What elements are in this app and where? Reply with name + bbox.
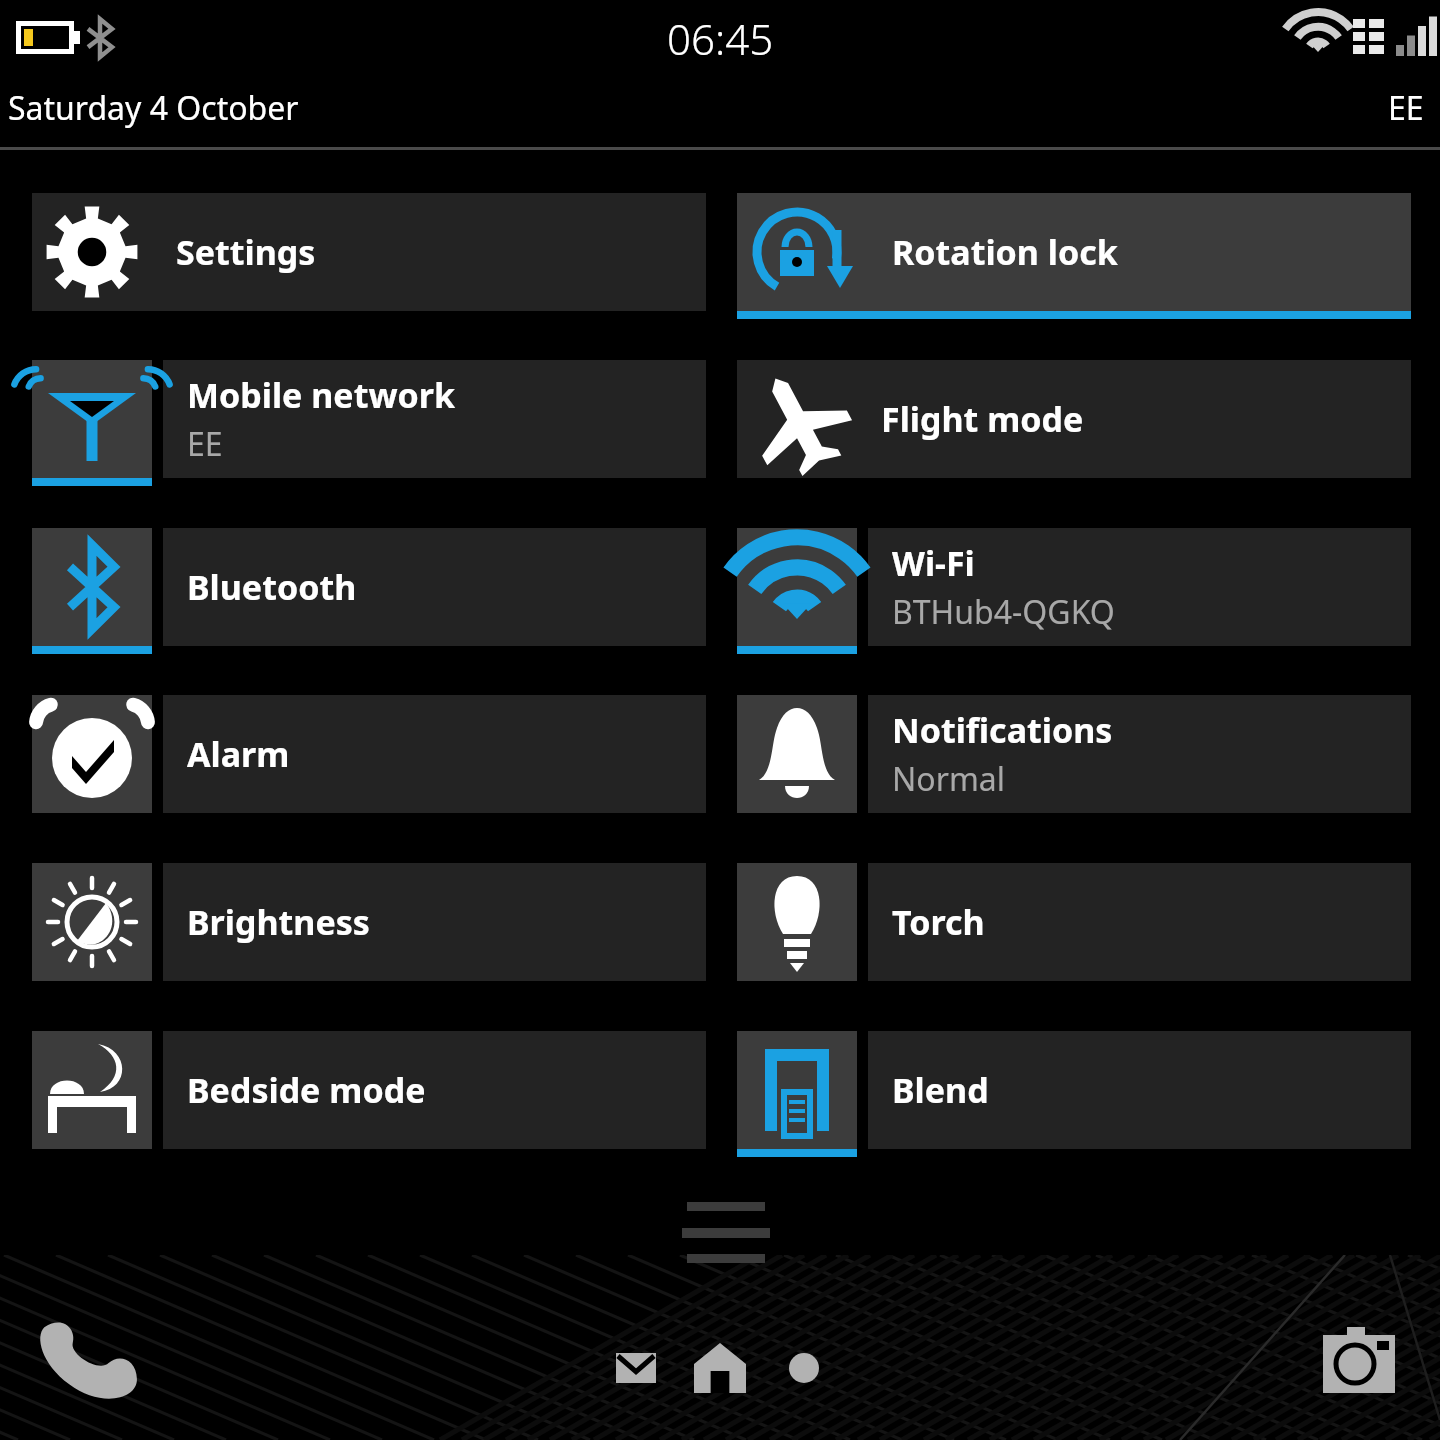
button[interactable]: Flight mode: [737, 360, 1411, 486]
button[interactable]: Messages: [594, 1328, 678, 1408]
button[interactable]: Recent apps: [762, 1328, 846, 1408]
button[interactable]: Camera: [1300, 1306, 1418, 1416]
button[interactable]: Brightness: [32, 863, 706, 989]
button[interactable]: Bluetooth: [32, 528, 706, 654]
staticText: Notifications: [892, 707, 1113, 753]
button[interactable]: Mobile network: [32, 360, 706, 486]
staticText: Brightness: [187, 899, 370, 945]
button[interactable]: Wi-Fi: [737, 528, 1411, 654]
button[interactable]: Home: [678, 1328, 762, 1408]
button[interactable]: Alarm: [32, 695, 706, 821]
staticText: Bedside mode: [187, 1067, 426, 1113]
button[interactable]: Settings: [32, 193, 706, 319]
button[interactable]: Expand panel: [682, 1200, 758, 1248]
staticText: Alarm: [187, 731, 290, 777]
staticText: Flight mode: [881, 396, 1084, 442]
staticText: Blend: [892, 1067, 989, 1113]
staticText: Mobile network: [187, 372, 456, 418]
staticText: Normal: [892, 757, 1006, 801]
button[interactable]: Blend: [737, 1031, 1411, 1157]
staticText: Torch: [892, 899, 985, 945]
button[interactable]: Bedside mode: [32, 1031, 706, 1157]
staticText: Settings: [176, 229, 316, 275]
button[interactable]: Rotation lock: [737, 193, 1411, 319]
staticText: Wi-Fi: [892, 540, 975, 586]
staticText: Saturday 4 October: [8, 86, 299, 130]
button[interactable]: Phone: [30, 1306, 148, 1416]
button[interactable]: Notifications: [737, 695, 1411, 821]
staticText: EE: [1388, 86, 1424, 130]
staticText: Bluetooth: [187, 564, 357, 610]
staticText: EE: [187, 422, 223, 466]
button[interactable]: Torch: [737, 863, 1411, 989]
staticText: 06:45: [667, 10, 774, 67]
staticText: BTHub4-QGKQ: [892, 590, 1115, 634]
staticText: Rotation lock: [892, 229, 1118, 275]
